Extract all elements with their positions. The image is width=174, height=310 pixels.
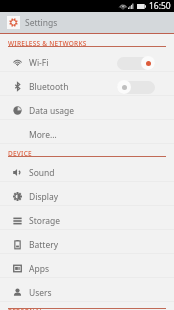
- button[interactable]: Display: [0, 182, 174, 206]
- staticText: WIRELESS & NETWORKS: [8, 39, 87, 48]
- button[interactable]: Wi-Fi: [0, 48, 174, 72]
- staticText: Apps: [29, 263, 49, 275]
- button[interactable]: On: [117, 56, 155, 70]
- staticText: 16:50: [149, 0, 171, 12]
- staticText: PERSONAL: [8, 307, 44, 310]
- button[interactable]: Apps: [0, 254, 174, 278]
- staticText: Wi-Fi: [29, 57, 49, 69]
- button[interactable]: Off: [117, 80, 155, 94]
- button[interactable]: Settings: [0, 12, 174, 33]
- staticText: Users: [29, 287, 52, 299]
- button[interactable]: Bluetooth: [0, 72, 174, 96]
- staticText: Sound: [29, 167, 55, 179]
- button[interactable]: More…: [0, 120, 174, 144]
- staticText: Storage: [29, 215, 61, 227]
- staticText: Bluetooth: [29, 81, 69, 93]
- button[interactable]: Sound: [0, 158, 174, 182]
- button[interactable]: Data usage: [0, 96, 174, 120]
- staticText: DEVICE: [8, 149, 32, 158]
- staticText: Settings: [25, 17, 58, 29]
- button[interactable]: Users: [0, 278, 174, 302]
- staticText: Battery: [29, 239, 59, 251]
- staticText: Display: [29, 191, 58, 203]
- staticText: Data usage: [29, 105, 75, 117]
- button[interactable]: Battery: [0, 230, 174, 254]
- staticText: More…: [29, 129, 57, 141]
- button[interactable]: Storage: [0, 206, 174, 230]
